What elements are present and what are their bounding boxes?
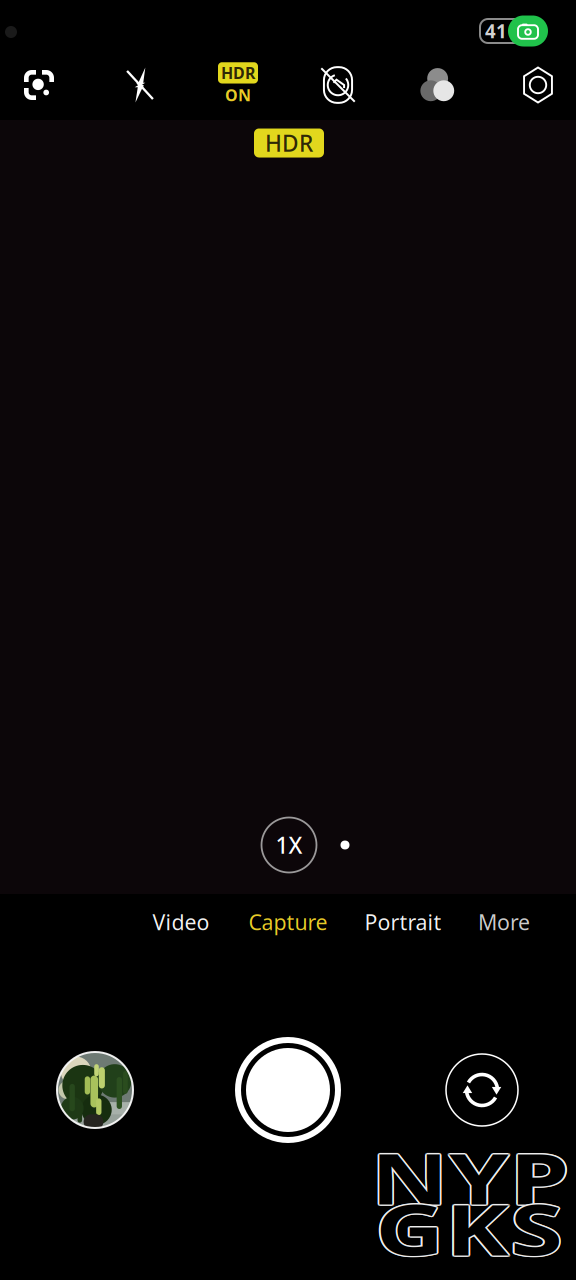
staticText: Video	[152, 908, 209, 936]
staticText: 41	[485, 19, 507, 43]
staticText: NYP	[396, 1131, 543, 1225]
staticText: Portrait	[364, 908, 441, 936]
staticText: GKS	[401, 1181, 540, 1275]
button[interactable]: Capture	[240, 898, 336, 946]
staticText: NYP	[395, 1130, 542, 1224]
staticText: Capture	[248, 908, 327, 936]
staticText: GKS	[399, 1180, 538, 1273]
staticText: NYP	[397, 1131, 544, 1225]
staticText: GKS	[398, 1181, 537, 1275]
staticText: GKS	[398, 1182, 537, 1276]
staticText: HDR	[265, 128, 313, 158]
staticText: GKS	[398, 1180, 537, 1274]
button[interactable]: Last photo	[43, 1038, 147, 1142]
staticText: 1X	[275, 830, 302, 860]
button[interactable]: HDR on	[198, 53, 278, 115]
button[interactable]: Switch camera	[430, 1038, 534, 1142]
button[interactable]: Portrait	[357, 898, 449, 946]
staticText: GKS	[400, 1182, 539, 1276]
staticText: HDR	[221, 62, 255, 83]
staticText: NYP	[395, 1131, 542, 1225]
staticText: ON	[225, 84, 251, 106]
staticText: NYP	[396, 1129, 543, 1222]
staticText: NYP	[395, 1129, 542, 1223]
staticText: More	[478, 908, 530, 936]
staticText: NYP	[396, 1130, 543, 1224]
staticText: NYP	[398, 1130, 545, 1224]
staticText: GKS	[399, 1181, 538, 1275]
staticText: NYP	[397, 1129, 544, 1223]
button[interactable]: Filters	[404, 54, 472, 116]
button[interactable]: Video	[141, 898, 221, 946]
button[interactable]: Settings	[504, 54, 572, 116]
staticText: GKS	[399, 1182, 538, 1276]
button[interactable]: Take photo	[229, 1031, 347, 1149]
button[interactable]: AI scene detection	[5, 54, 73, 116]
button[interactable]: More	[468, 898, 540, 946]
button[interactable]: Zoom 1X	[261, 817, 316, 872]
button[interactable]: Flash off	[106, 54, 174, 116]
button[interactable]: Zoom 2X	[325, 819, 365, 871]
staticText: GKS	[400, 1180, 539, 1274]
button[interactable]: Camera in use	[508, 15, 548, 46]
button[interactable]: Live photo off	[304, 54, 372, 116]
